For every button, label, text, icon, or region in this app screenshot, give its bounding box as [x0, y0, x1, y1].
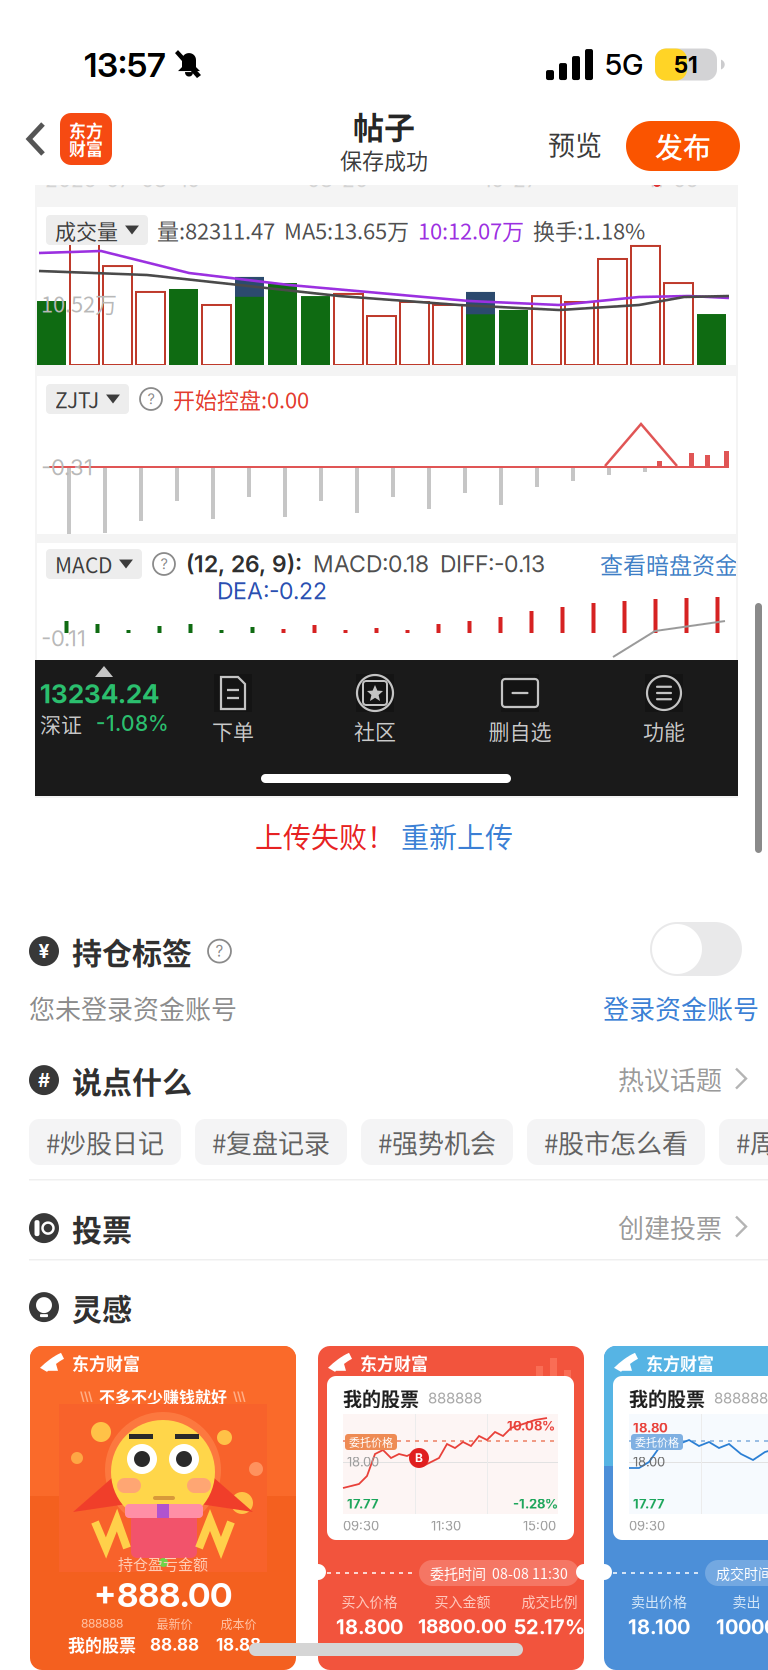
staticText: #周度策略 — [736, 1125, 768, 1158]
staticText: 成交比例 — [521, 1592, 577, 1610]
staticText: 开始控盘:0.00 — [173, 385, 309, 413]
staticText: 东方 — [69, 119, 103, 141]
button[interactable]: #复盘记录 — [195, 1119, 347, 1165]
staticText: # — [38, 1069, 50, 1091]
staticText: 不多不少赚钱就好 — [99, 1386, 227, 1406]
staticText: 重新上传 — [401, 818, 513, 854]
staticText: 热议话题 — [618, 1062, 722, 1095]
button[interactable]: #炒股日记 — [29, 1119, 181, 1165]
button[interactable]: 预览 — [542, 126, 608, 162]
button[interactable]: 发布 — [626, 121, 740, 171]
staticText: MA5:13.65万 — [284, 216, 409, 244]
staticText: 10.52万 — [41, 289, 117, 317]
button[interactable]: #强势机会 — [361, 1119, 513, 1165]
staticText: #强势机会 — [378, 1125, 496, 1158]
staticText: (12, 26, 9): — [186, 550, 302, 578]
staticText: 10-27 — [483, 167, 538, 192]
staticText: 说点什么 — [72, 1061, 192, 1099]
staticText: 18.00 — [347, 1454, 379, 1470]
staticText: 发布 — [655, 128, 711, 164]
staticText: 东方财富 — [360, 1352, 428, 1374]
button[interactable]: 社区 — [320, 674, 430, 744]
button[interactable]: 热议话题 — [618, 1062, 748, 1095]
staticText: #炒股日记 — [46, 1125, 164, 1158]
staticText: 成本价 — [220, 1616, 256, 1631]
staticText: 买入价格 — [341, 1592, 397, 1610]
staticText: 下单 — [212, 717, 254, 744]
staticText: 我的股票 — [343, 1386, 419, 1410]
staticText: 18.80 — [633, 1420, 668, 1436]
staticText: DEA:-0.22 — [217, 577, 327, 605]
staticText: 17.77 — [633, 1496, 665, 1512]
staticText: 最新价 — [156, 1616, 192, 1631]
staticText: 5G — [605, 47, 643, 82]
staticText: 18.800 — [336, 1615, 403, 1639]
staticText: 持仓盈亏金额 — [118, 1554, 208, 1573]
staticText: 卖出价格 — [631, 1592, 687, 1610]
staticText: -0.11 — [41, 625, 86, 652]
button[interactable]: 功能 — [609, 674, 719, 744]
staticText: 功能 — [643, 717, 685, 744]
staticText: 成交量 — [55, 217, 118, 243]
staticText: 18.100 — [628, 1615, 690, 1639]
staticText: MACD — [55, 551, 112, 577]
staticText: 社区 — [354, 717, 396, 744]
button[interactable]: 持仓标签开关 — [650, 922, 742, 976]
staticText: 委托价格 — [349, 1435, 393, 1449]
staticText: 帖子 — [353, 106, 415, 145]
staticText: 上传失败！ — [255, 818, 395, 854]
staticText: 投票 — [72, 1209, 132, 1247]
staticText: MACD:0.18 — [313, 550, 429, 578]
staticText: 09:30 — [343, 1518, 379, 1534]
staticText: 东方财富 — [646, 1352, 714, 1374]
staticText: 登录资金账号 — [603, 991, 759, 1024]
staticText: 您未登录资金账号 — [29, 991, 237, 1024]
staticText: 换手:1.18% — [533, 216, 645, 244]
button[interactable]: #股市怎么看 — [527, 1119, 705, 1165]
staticText: 17.77 — [347, 1496, 379, 1512]
staticText: ? — [147, 390, 154, 408]
staticText: 我的股票 — [629, 1386, 705, 1410]
staticText: 18.00 — [633, 1454, 665, 1470]
staticText: 委托价格 — [635, 1435, 679, 1449]
button[interactable]: 登录资金账号 — [603, 991, 759, 1024]
staticText: 卖出 — [732, 1592, 760, 1610]
button[interactable]: 下单 — [178, 674, 288, 744]
staticText: 09:30 — [629, 1518, 665, 1534]
staticText: 52.17% — [514, 1615, 585, 1639]
staticText: 创建投票 — [618, 1210, 722, 1243]
staticText: 成交时间 0 — [716, 1564, 768, 1582]
button[interactable]: 返回 — [18, 110, 118, 168]
staticText: 15:00 — [523, 1518, 556, 1534]
staticText: 18800.00 — [418, 1615, 507, 1638]
staticText: 预览 — [548, 127, 602, 161]
button[interactable]: #周度策略 — [719, 1119, 768, 1165]
staticText: 13234.24 — [40, 678, 159, 709]
staticText: DIFF:-0.13 — [440, 550, 545, 578]
staticText: 保存成功 — [340, 145, 428, 173]
staticText: 888888 — [428, 1389, 482, 1407]
button[interactable]: 删自选 — [465, 674, 575, 744]
button[interactable]: 创建投票 — [618, 1210, 748, 1243]
staticText: ZJTJ — [55, 386, 99, 412]
staticText: 持仓标签 — [72, 932, 192, 970]
button[interactable]: 重新上传 — [401, 818, 513, 854]
staticText: 18.88 — [216, 1634, 261, 1655]
staticText: #复盘记录 — [212, 1125, 330, 1158]
staticText: 10:12.07万 — [418, 216, 524, 244]
staticText: 量:82311.47 — [157, 216, 275, 244]
staticText: \\\ — [80, 1389, 93, 1403]
staticText: 11-05 — [647, 167, 698, 192]
staticText: 财富 — [69, 137, 103, 159]
staticText: 2025-07-08 10 — [45, 167, 200, 192]
staticText: 东方财富 — [72, 1352, 140, 1374]
staticText: 11:30 — [431, 1518, 461, 1534]
staticText: \\\ — [233, 1389, 246, 1403]
staticText: +888.00 — [94, 1574, 232, 1615]
staticText: 13:57 — [84, 44, 166, 85]
staticText: -1.28% — [513, 1496, 558, 1512]
staticText: 08-20 — [307, 167, 368, 192]
staticText: 10.08% — [507, 1418, 555, 1434]
staticText: -0.31 — [41, 454, 93, 481]
staticText: 51 — [674, 51, 698, 78]
